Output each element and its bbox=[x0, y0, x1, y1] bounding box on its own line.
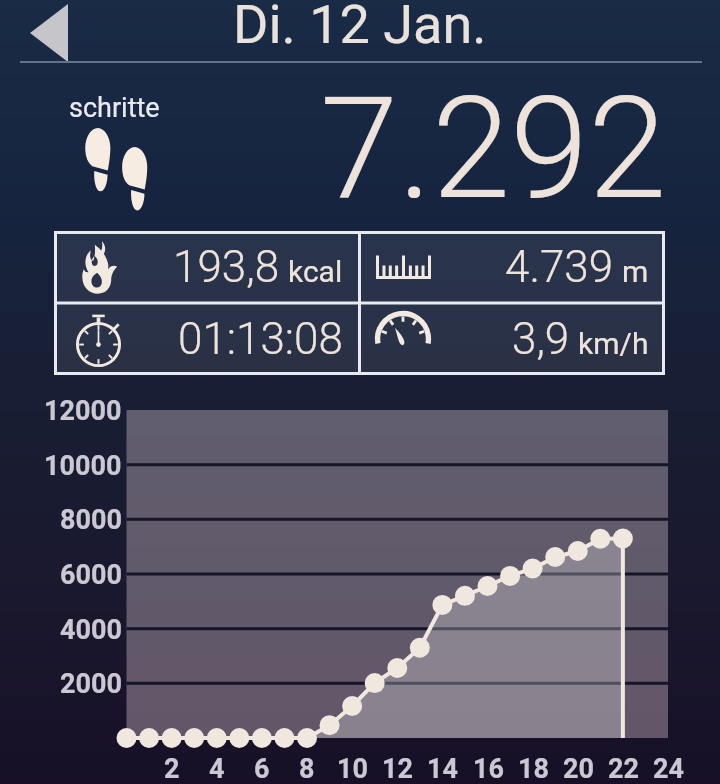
staticText: Di. 12 Jan. bbox=[233, 0, 487, 56]
staticText: 4 bbox=[209, 753, 225, 784]
staticText: 18 bbox=[518, 753, 549, 784]
staticText: m bbox=[622, 254, 649, 289]
staticText: kcal bbox=[288, 254, 343, 289]
staticText: km/h bbox=[578, 326, 649, 361]
staticText: 2000 bbox=[60, 668, 122, 700]
staticText: 22 bbox=[608, 753, 639, 784]
button[interactable]: 3,9 bbox=[359, 303, 665, 375]
staticText: 8000 bbox=[60, 504, 122, 536]
staticText: 24 bbox=[653, 753, 684, 784]
button[interactable]: 193,8 bbox=[54, 231, 359, 303]
button[interactable]: 01:13:08 bbox=[54, 303, 359, 375]
staticText: 4.739 bbox=[505, 241, 614, 293]
staticText: 16 bbox=[473, 753, 504, 784]
staticText: 01:13:08 bbox=[178, 313, 343, 365]
button[interactable]: Back bbox=[14, 2, 90, 64]
staticText: 20 bbox=[563, 753, 594, 784]
staticText: 8 bbox=[299, 753, 315, 784]
staticText: 12 bbox=[382, 753, 413, 784]
staticText: 6000 bbox=[60, 559, 122, 591]
staticText: 193,8 bbox=[173, 241, 280, 293]
staticText: 10000 bbox=[44, 450, 122, 482]
staticText: 2 bbox=[164, 753, 180, 784]
staticText: 7.292 bbox=[320, 66, 667, 231]
button[interactable]: 4.739 bbox=[359, 231, 665, 303]
staticText: 10 bbox=[337, 753, 368, 784]
staticText: schritte bbox=[69, 92, 160, 124]
staticText: 3,9 bbox=[512, 313, 570, 365]
staticText: 14 bbox=[427, 753, 458, 784]
staticText: 12000 bbox=[44, 395, 122, 427]
staticText: 4000 bbox=[60, 614, 122, 646]
staticText: 6 bbox=[254, 753, 270, 784]
